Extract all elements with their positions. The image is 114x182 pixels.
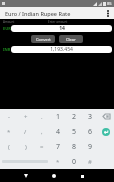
staticText: INR [3,47,11,52]
staticText: 4 [56,127,61,137]
button[interactable]: Space [2,154,48,169]
button[interactable]: Back [20,170,32,182]
button[interactable]: 2 [66,109,82,124]
staticText: Convert [36,37,51,42]
staticText: 7 [56,142,61,152]
staticText: 0 [72,157,77,167]
button[interactable]: Symbols [50,154,66,169]
button[interactable]: Backspace [98,109,114,124]
staticText: 1 [56,112,61,122]
staticText: 85 [107,1,112,6]
button[interactable]: ( [0,139,17,154]
button[interactable]: Recent apps [76,170,88,182]
staticText: = [40,143,44,151]
staticText: - [8,113,10,121]
button[interactable]: * [0,124,17,139]
button[interactable]: Enter [102,128,110,136]
button[interactable]: , [34,124,50,139]
staticText: 3 [88,112,93,122]
staticText: + [24,113,28,121]
button[interactable]: - [0,109,17,124]
staticText: 8 [72,142,77,152]
button[interactable]: 1 [50,109,66,124]
staticText: * [7,128,11,136]
staticText: # [88,158,92,166]
button[interactable]: More options [102,7,114,19]
staticText: 9 [88,142,93,152]
staticText: 14 [59,25,65,32]
staticText: 1,193.454 [50,46,73,53]
staticText: Enter amount [48,20,68,24]
staticText: . [41,113,43,121]
staticText: ( [8,143,10,151]
button[interactable]: Home [48,170,60,182]
staticText: / [24,128,27,136]
staticText: Clear [66,37,76,42]
button[interactable]: = [34,139,50,154]
staticText: ) [25,143,27,151]
staticText: EUR [3,26,11,31]
button[interactable]: 1,193.454 [11,46,112,53]
button[interactable]: 6 [82,124,98,139]
staticText: Euro / Indian Rupee Rate [5,10,71,17]
button[interactable]: EUR [2,24,11,33]
staticText: Amount [3,20,15,24]
button[interactable]: 7 [50,139,66,154]
staticText: 6 [88,127,93,137]
staticText: * [56,158,60,166]
button[interactable]: 5 [66,124,82,139]
button[interactable]: INR [2,45,11,54]
staticText: 5 [72,127,77,137]
button[interactable]: ) [17,139,34,154]
button[interactable]: / [17,124,34,139]
button[interactable]: 4 [50,124,66,139]
staticText: , [41,128,43,136]
button[interactable]: + [17,109,34,124]
button[interactable]: 9 [82,139,98,154]
button[interactable]: # [82,154,98,169]
staticText: 2 [72,112,77,122]
button[interactable]: Convert [31,35,55,43]
button[interactable]: 14 [11,25,112,32]
button[interactable]: 3 [82,109,98,124]
button[interactable]: 8 [66,139,82,154]
button[interactable]: 0 [66,154,82,169]
button[interactable]: Clear [59,35,83,43]
